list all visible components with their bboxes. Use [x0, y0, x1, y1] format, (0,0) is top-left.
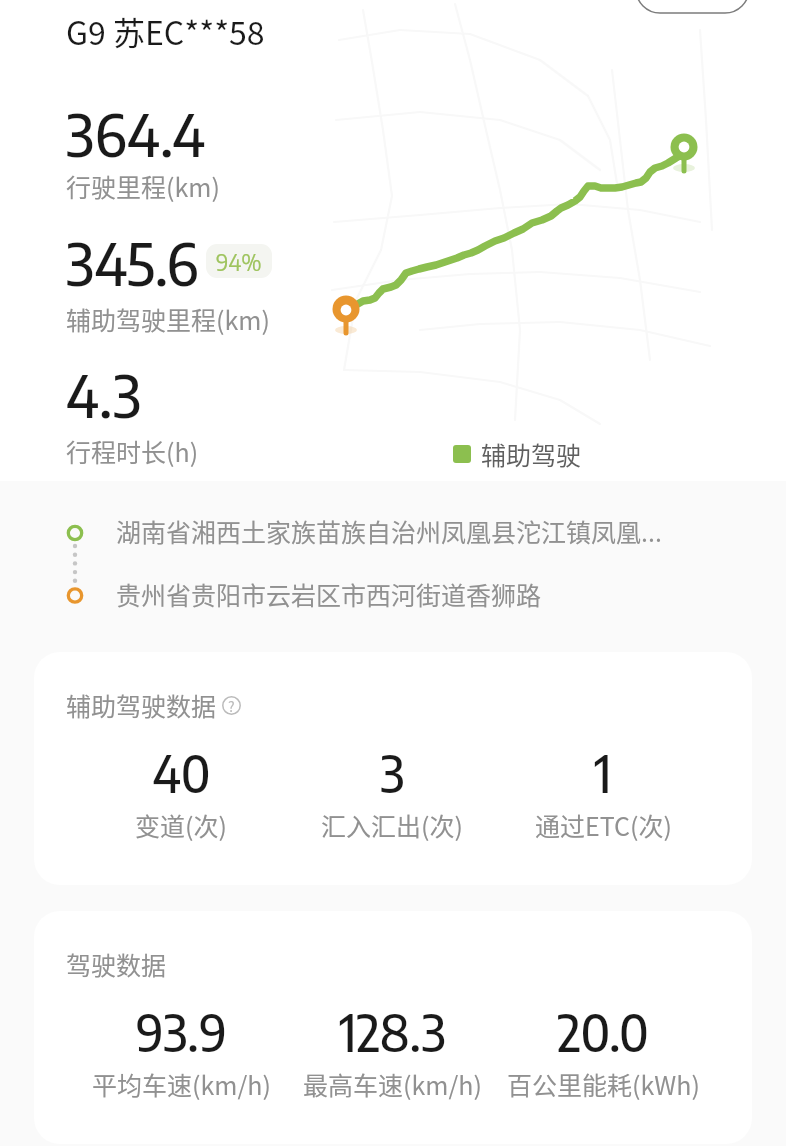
- staticText: 辅助驾驶数据: [66, 687, 217, 723]
- staticText: 行驶里程(km): [66, 168, 220, 204]
- staticText: 128.3: [339, 1000, 446, 1063]
- button[interactable]: 驾驶数据: [34, 911, 752, 1144]
- staticText: ?: [228, 696, 235, 715]
- staticText: 93.9: [136, 1000, 227, 1063]
- staticText: 通过ETC(次): [535, 807, 672, 843]
- staticText: 驾驶数据: [66, 946, 167, 982]
- staticText: 最高车速(km/h): [303, 1066, 482, 1102]
- staticText: 20.0: [557, 1000, 649, 1063]
- staticText: 3: [380, 741, 405, 804]
- staticText: 1: [594, 741, 612, 804]
- staticText: 湖南省湘西土家族苗族自治州凤凰县沱江镇凤凰...: [116, 513, 716, 549]
- staticText: 汇入汇出(次): [321, 807, 463, 843]
- staticText: 4.3: [66, 358, 142, 430]
- staticText: G9 苏EC***58: [66, 8, 265, 54]
- staticText: 345.6: [66, 226, 199, 298]
- button[interactable]: 说明: [222, 696, 241, 715]
- button[interactable]: 更多: [636, 0, 749, 13]
- staticText: 辅助驾驶: [481, 436, 582, 472]
- staticText: 平均车速(km/h): [92, 1066, 271, 1102]
- staticText: 变道(次): [135, 807, 227, 843]
- staticText: 百公里能耗(kWh): [507, 1066, 700, 1102]
- button[interactable]: 辅助驾驶数据: [34, 652, 752, 885]
- staticText: 364.4: [66, 97, 206, 169]
- staticText: 行程时长(h): [66, 433, 199, 469]
- staticText: 辅助驾驶里程(km): [66, 301, 270, 337]
- staticText: 40: [152, 741, 211, 804]
- staticText: 贵州省贵阳市云岩区市西河街道香狮路: [116, 576, 716, 612]
- staticText: 94%: [216, 247, 262, 276]
